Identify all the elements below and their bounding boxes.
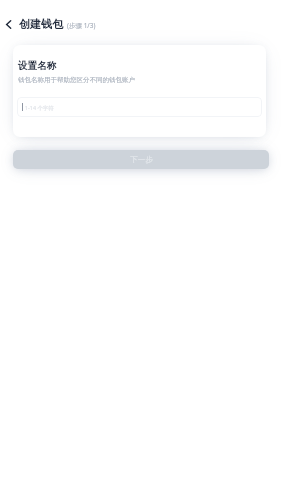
staticText: 创建钱包 (19, 17, 63, 31)
staticText: 1-14 个字符 (25, 104, 54, 111)
staticText: 钱包名称用于帮助您区分不同的钱包账户 (18, 76, 135, 84)
button[interactable]: Back (0, 16, 16, 32)
staticText: 设置名称 (18, 60, 57, 72)
staticText: 下一步 (130, 155, 153, 164)
button[interactable]: 1-14 个字符 (17, 97, 262, 117)
staticText: (步骤 1/3) (67, 21, 96, 30)
